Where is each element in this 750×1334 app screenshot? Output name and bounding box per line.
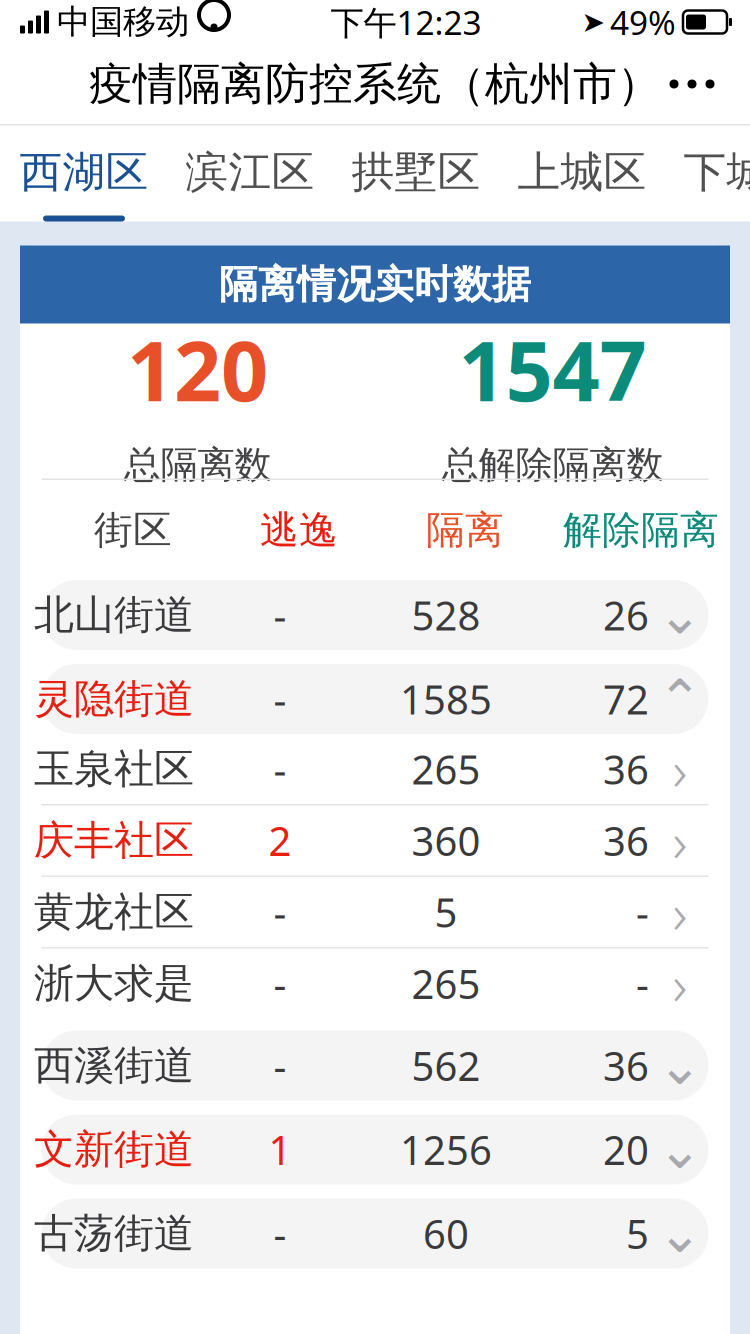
staticText: › [672, 803, 687, 878]
staticText: ⌄ [657, 1035, 702, 1096]
staticText: 灵隐街道 [34, 674, 194, 723]
staticText: 562 [411, 1039, 480, 1092]
staticText: - [273, 1039, 286, 1092]
staticText: 文新街道 [34, 1125, 194, 1174]
button[interactable]: 文新街道 [41, 1114, 708, 1184]
staticText: 庆丰社区 [34, 816, 194, 865]
staticText: 北山街道 [34, 590, 194, 639]
staticText: › [672, 946, 687, 1021]
staticText: 5 [434, 885, 457, 938]
staticText: 古荡街道 [34, 1209, 194, 1258]
button[interactable]: 浙大求是 [41, 947, 708, 1018]
staticText: - [273, 742, 286, 795]
staticText: 1256 [400, 1123, 492, 1176]
staticText: › [672, 732, 687, 806]
staticText: 20 [603, 1123, 649, 1176]
staticText: 隔离情况实时数据 [219, 261, 531, 308]
staticText: 玉泉社区 [34, 744, 194, 793]
staticText: 120 [127, 314, 268, 424]
staticText: 总隔离数 [123, 442, 271, 488]
staticText: 1547 [458, 314, 646, 424]
button[interactable]: 北山街道 [41, 580, 708, 650]
button[interactable]: 滨江区 [167, 125, 333, 221]
staticText: 528 [411, 588, 480, 641]
staticText: ➤ [581, 6, 604, 38]
staticText: 2 [268, 814, 291, 867]
staticText: 隔离 [426, 506, 504, 554]
staticText: 解除隔离 [563, 506, 719, 554]
button[interactable]: 灵隐街道 [41, 664, 708, 734]
button[interactable]: 西溪街道 [41, 1030, 708, 1100]
staticText: 滨江区 [185, 146, 314, 198]
button[interactable]: 古荡街道 [41, 1198, 708, 1268]
staticText: 浙大求是 [34, 959, 194, 1008]
staticText: 西湖区 [19, 146, 148, 198]
staticText: - [273, 672, 286, 725]
staticText: - [636, 957, 649, 1010]
staticText: - [273, 885, 286, 938]
staticText: ⌄ [657, 1119, 702, 1180]
staticText: 下午12:23 [330, 0, 481, 44]
staticText: 拱墅区 [351, 146, 480, 198]
button[interactable]: 更多 [652, 56, 732, 112]
staticText: 总解除隔离数 [441, 442, 663, 488]
staticText: 西溪街道 [34, 1041, 194, 1090]
staticText: 36 [603, 742, 649, 795]
button[interactable]: 庆丰社区 [41, 804, 708, 875]
staticText: 下城区 [683, 146, 750, 198]
staticText: ⌄ [657, 1203, 702, 1264]
staticText: - [636, 885, 649, 938]
staticText: 1585 [400, 672, 492, 725]
staticText: 街区 [94, 506, 172, 554]
staticText: 上城区 [517, 146, 646, 198]
staticText: 疫情隔离防控系统（杭州市） [89, 57, 661, 111]
staticText: 36 [603, 1039, 649, 1092]
staticText: 黄龙社区 [34, 887, 194, 936]
staticText: 49% [610, 0, 676, 44]
staticText: 265 [411, 957, 480, 1010]
staticText: ⌄ [657, 585, 702, 645]
button[interactable]: 上城区 [499, 125, 665, 221]
staticText: 60 [423, 1207, 469, 1260]
staticText: › [672, 875, 687, 949]
staticText: 逃逸 [260, 506, 338, 554]
staticText: 5 [626, 1207, 649, 1260]
staticText: 36 [603, 814, 649, 867]
staticText: 72 [603, 672, 649, 725]
button[interactable]: 黄龙社区 [41, 875, 708, 947]
staticText: ⌃ [657, 669, 702, 729]
button[interactable]: 下城区 [665, 125, 750, 221]
staticText: 1 [268, 1123, 291, 1176]
button[interactable]: 西湖区 [1, 125, 167, 221]
staticText: - [273, 1207, 286, 1260]
staticText: 360 [411, 814, 480, 867]
staticText: - [273, 957, 286, 1010]
button[interactable]: 拱墅区 [333, 125, 499, 221]
staticText: 中国移动 [57, 1, 189, 42]
button[interactable]: 玉泉社区 [41, 734, 708, 804]
staticText: - [273, 588, 286, 641]
staticText: 265 [411, 742, 480, 795]
staticText: 26 [603, 588, 649, 641]
